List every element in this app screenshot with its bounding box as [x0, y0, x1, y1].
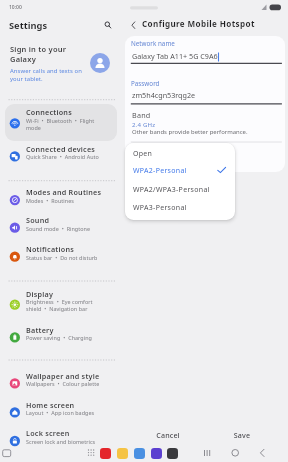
- staticText: Display: [26, 289, 54, 299]
- button[interactable]: [5, 108, 117, 138]
- staticText: Sign in to your Galaxy: [10, 44, 67, 64]
- button[interactable]: Back: [253, 445, 271, 462]
- staticText: Cancel: [145, 430, 191, 440]
- staticText: Configure Mobile Hotspot: [142, 18, 255, 29]
- staticText: WPA3-Personal: [133, 203, 187, 213]
- button[interactable]: Search: [100, 17, 114, 31]
- staticText: Connections: [26, 107, 72, 117]
- staticText: WPA2-Personal: [133, 166, 187, 176]
- staticText: Power saving • Charging: [26, 334, 92, 341]
- staticText: Layout • App icon badges: [26, 409, 95, 416]
- button[interactable]: App: [117, 448, 128, 459]
- button[interactable]: App: [134, 448, 145, 459]
- staticText: Modes • Routines: [26, 197, 74, 204]
- button[interactable]: [5, 289, 117, 319]
- staticText: Wi-Fi • Bluetooth • Flight mode: [26, 117, 95, 132]
- button[interactable]: [5, 144, 117, 167]
- staticText: Settings: [9, 19, 48, 32]
- button[interactable]: Home: [226, 445, 244, 462]
- staticText: Wallpaper and style: [26, 371, 100, 381]
- button[interactable]: [125, 196, 235, 214]
- staticText: Modes and Routines: [26, 187, 102, 197]
- button[interactable]: App: [100, 448, 111, 459]
- button[interactable]: [5, 216, 117, 239]
- staticText: Sound mode • Ringtone: [26, 225, 91, 232]
- button[interactable]: Back: [126, 17, 140, 31]
- staticText: Galaxy Tab A11+ 5G C9A6: [132, 51, 218, 61]
- button[interactable]: [125, 178, 235, 196]
- button[interactable]: Recents: [198, 445, 216, 462]
- staticText: Battery: [26, 325, 54, 335]
- staticText: Band: [132, 110, 151, 120]
- staticText: Quick Share • Android Auto: [26, 153, 99, 160]
- button[interactable]: [5, 371, 117, 394]
- staticText: Password: [131, 79, 160, 88]
- button[interactable]: App: [151, 448, 162, 459]
- staticText: Status bar • Do not disturb: [26, 254, 98, 261]
- staticText: Save: [218, 430, 266, 440]
- staticText: Wallpapers • Colour palette: [26, 380, 100, 387]
- button[interactable]: Cancel: [145, 425, 191, 444]
- button[interactable]: [5, 400, 117, 423]
- staticText: Screen lock and biometrics: [26, 438, 96, 445]
- button[interactable]: [5, 325, 117, 348]
- staticText: Answer calls and texts on your tablet.: [10, 67, 82, 83]
- button[interactable]: Save: [218, 425, 266, 444]
- button[interactable]: Samsung account: [90, 53, 110, 73]
- button[interactable]: [5, 245, 117, 268]
- button[interactable]: [5, 188, 117, 211]
- staticText: Brightness • Eye comfort shield • Naviga…: [26, 298, 93, 313]
- button[interactable]: [125, 160, 235, 178]
- staticText: Home screen: [26, 400, 75, 410]
- staticText: Lock screen: [26, 428, 70, 438]
- staticText: Other bands provide better performance.: [132, 128, 248, 136]
- button[interactable]: [5, 429, 117, 452]
- staticText: 10:00: [9, 4, 22, 11]
- staticText: Connected devices: [26, 144, 96, 154]
- staticText: Open: [133, 149, 153, 159]
- button[interactable]: App: [167, 448, 178, 459]
- staticText: 2.4 GHz: [132, 120, 156, 128]
- staticText: zm5h4cgn53rqg2e: [132, 90, 196, 100]
- staticText: Notifications: [26, 244, 74, 254]
- button[interactable]: [125, 143, 235, 161]
- staticText: Network name: [131, 39, 175, 48]
- staticText: Sound: [26, 215, 50, 225]
- staticText: WPA2/WPA3-Personal: [133, 185, 210, 195]
